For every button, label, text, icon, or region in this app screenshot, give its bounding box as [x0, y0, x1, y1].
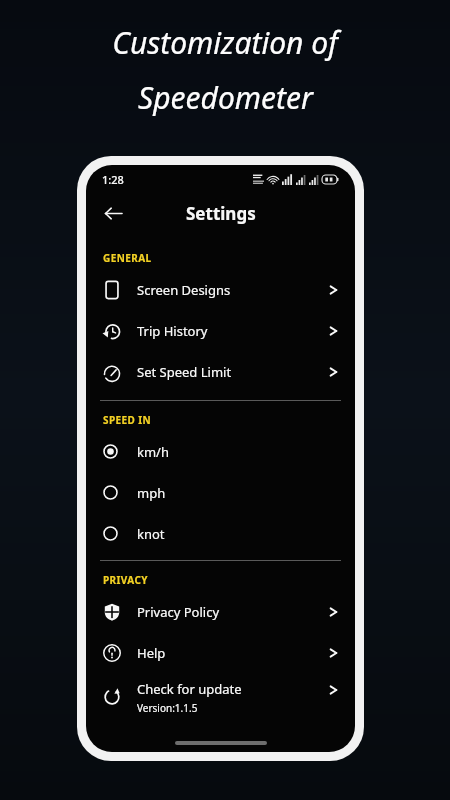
staticText: Customization of	[112, 22, 338, 63]
staticText: Set Speed Limit	[137, 363, 329, 381]
staticText: Version:1.1.5	[137, 701, 198, 715]
staticText: Privacy Policy	[137, 603, 329, 621]
button[interactable]: Back	[94, 194, 132, 232]
staticText: knot	[137, 525, 165, 543]
staticText: Speedometer	[138, 77, 313, 118]
staticText: Trip History	[137, 322, 329, 340]
staticText: Help	[137, 644, 329, 662]
button[interactable]: mph	[86, 472, 355, 513]
staticText: Check for update	[137, 680, 242, 698]
button[interactable]: km/h	[86, 431, 355, 472]
staticText: PRIVACY	[103, 573, 148, 587]
button[interactable]: Screen Designs	[86, 269, 355, 310]
button[interactable]: Set Speed Limit	[86, 351, 355, 392]
button[interactable]: Privacy Policy	[86, 591, 355, 632]
staticText: 1:28	[102, 172, 124, 187]
button[interactable]: Check for update	[86, 673, 355, 721]
staticText: Screen Designs	[137, 281, 329, 299]
staticText: km/h	[137, 443, 169, 461]
staticText: Settings	[186, 202, 256, 225]
button[interactable]: Help	[86, 632, 355, 673]
button[interactable]: knot	[86, 513, 355, 554]
staticText: SPEED IN	[103, 413, 152, 427]
button[interactable]: Trip History	[86, 310, 355, 351]
staticText: GENERAL	[103, 251, 152, 265]
staticText: mph	[137, 484, 166, 502]
